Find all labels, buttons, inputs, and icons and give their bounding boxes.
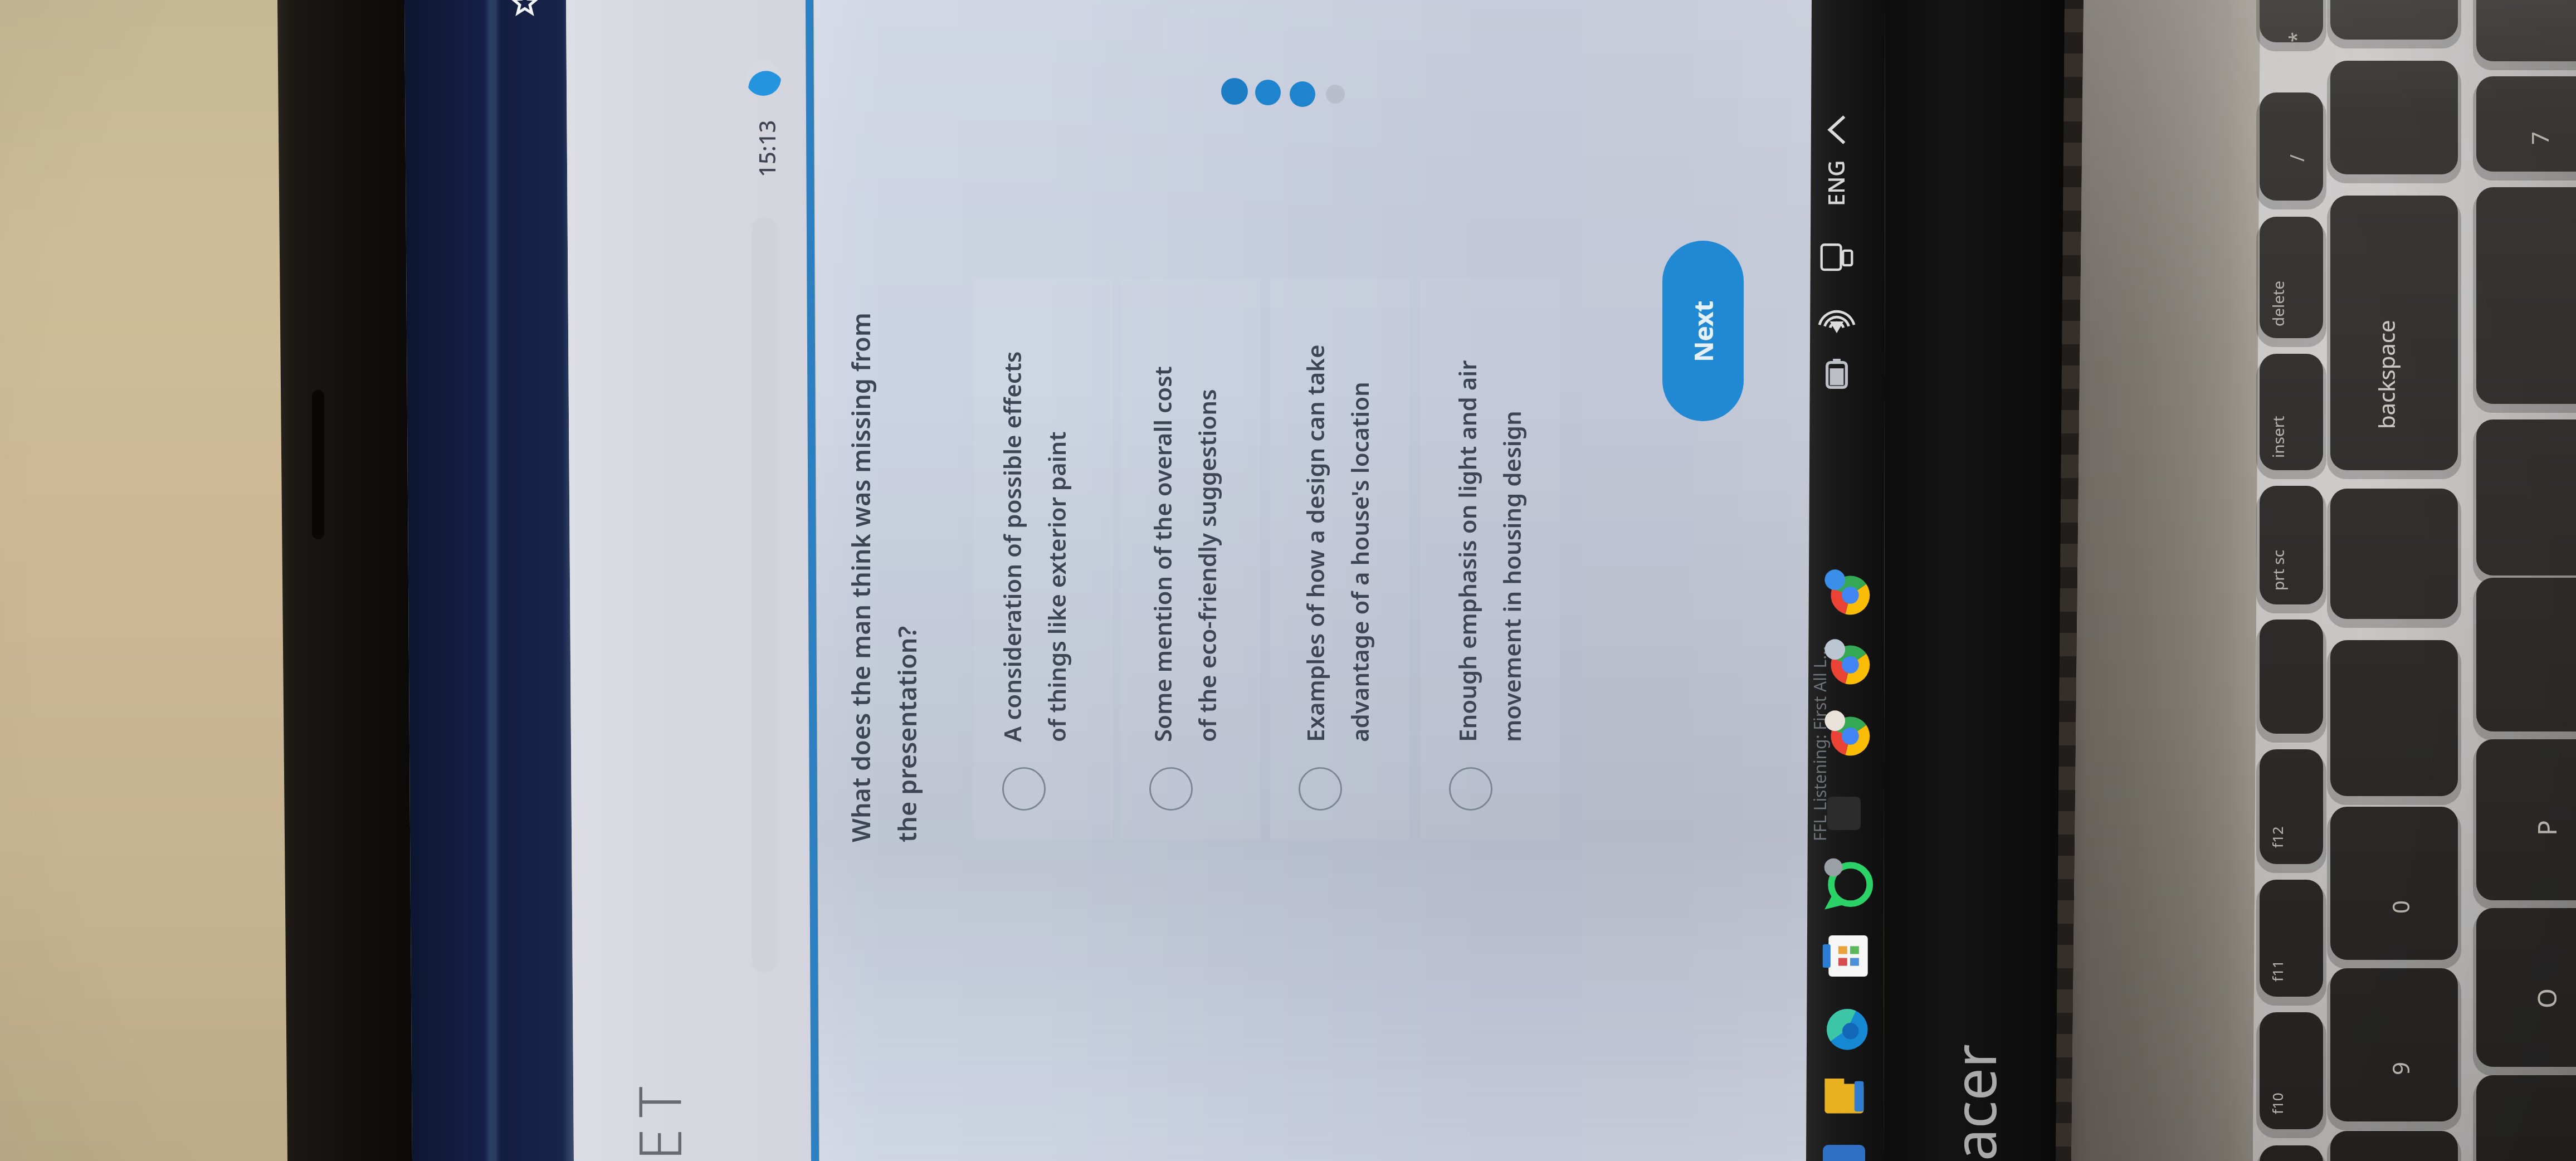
button[interactable]: Google Chrome window 1: [1821, 565, 1872, 617]
staticText: f12: [2267, 826, 2287, 848]
staticText: Enough emphasis on light and air: [1451, 360, 1483, 742]
button[interactable]: Microsoft Edge: [1821, 1003, 1872, 1054]
staticText: 0: [2384, 900, 2416, 914]
staticText: Examples of how a design can take: [1299, 344, 1331, 742]
button[interactable]: Question 3: [1290, 81, 1315, 107]
button[interactable]: Battery: [1819, 357, 1854, 393]
staticText: of things like exterior paint: [1041, 431, 1072, 742]
button[interactable]: [1421, 279, 1560, 840]
button[interactable]: Question 2: [1255, 80, 1281, 105]
button[interactable]: Microsoft Store: [1823, 1145, 1865, 1161]
button[interactable]: WhatsApp: [1819, 853, 1873, 907]
button[interactable]: Display settings: [1819, 240, 1854, 276]
staticText: A consideration of possible effects: [996, 351, 1028, 742]
staticText: delete: [2267, 281, 2289, 326]
staticText: O: [2529, 988, 2564, 1008]
staticText: What does the man think was missing from: [843, 312, 877, 842]
staticText: of the eco-friendly suggestions: [1191, 389, 1223, 742]
button[interactable]: Toggle dark theme: [745, 60, 781, 96]
staticText: prt sc: [2267, 549, 2289, 591]
staticText: movement in housing design: [1496, 411, 1528, 742]
button[interactable]: Show hidden icons: [1823, 111, 1852, 148]
staticText: SET: [619, 1075, 699, 1161]
button[interactable]: Google Chrome window 2: [1821, 635, 1872, 686]
staticText: insert: [2267, 416, 2289, 458]
staticText: f11: [2267, 960, 2287, 982]
button[interactable]: Question 1: [1221, 78, 1248, 105]
button[interactable]: [974, 279, 1113, 840]
staticText: P: [2529, 820, 2564, 836]
staticText: /: [2284, 154, 2310, 162]
button[interactable]: [1270, 279, 1409, 840]
button[interactable]: Bookmark this page: [510, 0, 540, 22]
button[interactable]: Network: [1819, 301, 1854, 338]
button[interactable]: Microsoft Office: [1822, 931, 1871, 980]
staticText: 9: [2384, 1061, 2416, 1075]
staticText: *: [2283, 32, 2309, 42]
staticText: 15:13: [752, 120, 782, 177]
staticText: ENG: [1821, 160, 1851, 206]
button[interactable]: Question 4: [1326, 85, 1345, 104]
button[interactable]: Next: [1662, 241, 1744, 421]
button[interactable]: File Explorer: [1821, 1074, 1872, 1119]
staticText: the presentation?: [890, 626, 924, 842]
staticText: 7: [2524, 131, 2555, 145]
staticText: Next: [1686, 300, 1721, 362]
staticText: Some mention of the overall cost: [1146, 366, 1178, 742]
staticText: f10: [2267, 1092, 2287, 1114]
staticText: backspace: [2371, 320, 2401, 429]
button[interactable]: [1121, 279, 1260, 840]
staticText: acer: [1934, 1044, 2013, 1161]
staticText: FFL Listening: First All L...: [1808, 646, 1831, 841]
staticText: advantage of a house's location: [1344, 382, 1375, 742]
button[interactable]: Google Chrome window 3: [1821, 706, 1872, 758]
